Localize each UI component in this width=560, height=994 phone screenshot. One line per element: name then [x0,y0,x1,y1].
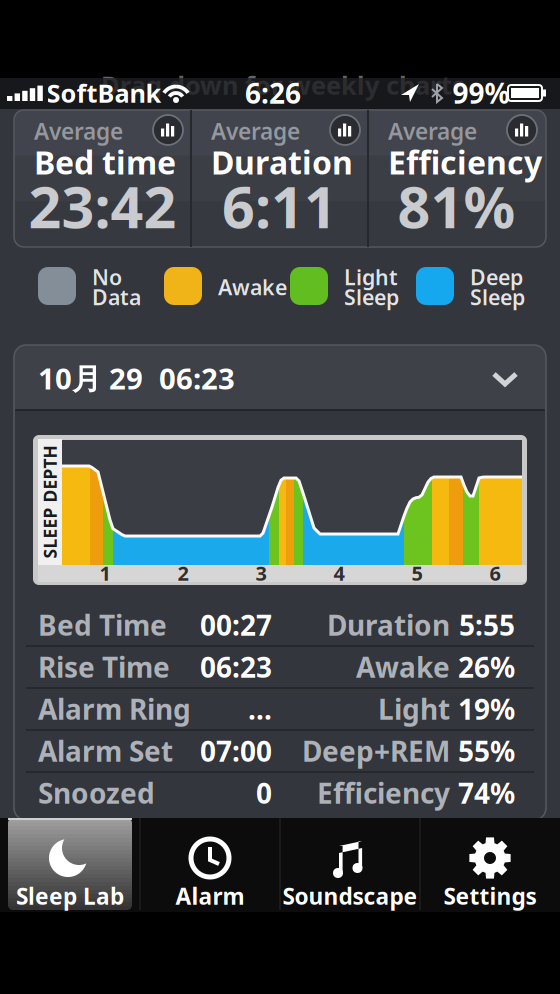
staticText: SoftBank [46,76,161,110]
staticText: Drag down for weekly charts [101,68,465,102]
staticText: Duration [211,141,353,183]
staticText: 5:55 [459,606,515,644]
button[interactable]: Soundscape [280,818,420,910]
staticText: Average [388,116,477,146]
staticText: Soundscape [282,881,417,911]
staticText: SLEEP DEPTH [0,490,106,513]
staticText: 0 [256,774,272,812]
staticText: 6:26 [245,74,301,112]
staticText: Settings [443,881,536,911]
staticText: Efficiency [388,141,542,183]
staticText: Light [344,263,398,291]
staticText: Bed time [34,141,176,183]
staticText: 99% [452,74,509,112]
staticText: 2 [177,560,188,586]
staticText: Alarm [175,881,244,911]
button[interactable]: Bed time chart [153,115,183,145]
staticText: 4 [333,560,344,586]
staticText: 26% [458,648,515,686]
button[interactable]: Sleep Lab [0,818,140,910]
staticText: ... [248,690,272,728]
staticText: Average [34,116,123,146]
staticText: Sleep Lab [16,881,124,911]
staticText: 5 [411,560,422,586]
staticText: Light [378,690,450,728]
staticText: 74% [458,774,515,812]
staticText: Alarm Set [38,732,173,770]
staticText: 55% [458,732,515,770]
staticText: Awake [356,648,450,686]
staticText: 6:11 [222,168,337,244]
staticText: 3 [255,560,266,586]
staticText: 23:42 [28,168,176,244]
staticText: Rise Time [38,648,170,686]
staticText: No [92,263,122,291]
button[interactable]: Efficiency chart [507,115,537,145]
button[interactable]: Settings [420,818,560,910]
staticText: Duration [327,606,450,644]
staticText: Sleep [470,283,525,311]
staticText: 6 [489,560,500,586]
staticText: 06:23 [200,648,272,686]
staticText: 19% [458,690,515,728]
staticText: Data [92,283,141,311]
staticText: Snoozed [38,774,155,812]
staticText: Average [211,116,300,146]
staticText: 00:27 [200,606,272,644]
staticText: Sleep [344,283,399,311]
staticText: 07:00 [200,732,272,770]
staticText: Awake [218,273,287,301]
staticText: 10月 29 06:23 [38,358,235,397]
staticText: Deep+REM [302,732,450,770]
staticText: Deep [470,263,523,291]
button[interactable]: Alarm [140,818,280,910]
staticText: 1 [99,560,110,586]
button[interactable]: Duration chart [330,115,360,145]
button[interactable]: Collapse day [14,345,546,409]
staticText: Alarm Ring [38,690,191,728]
staticText: Bed Time [38,606,167,644]
staticText: 81% [397,168,515,244]
staticText: Efficiency [317,774,450,812]
